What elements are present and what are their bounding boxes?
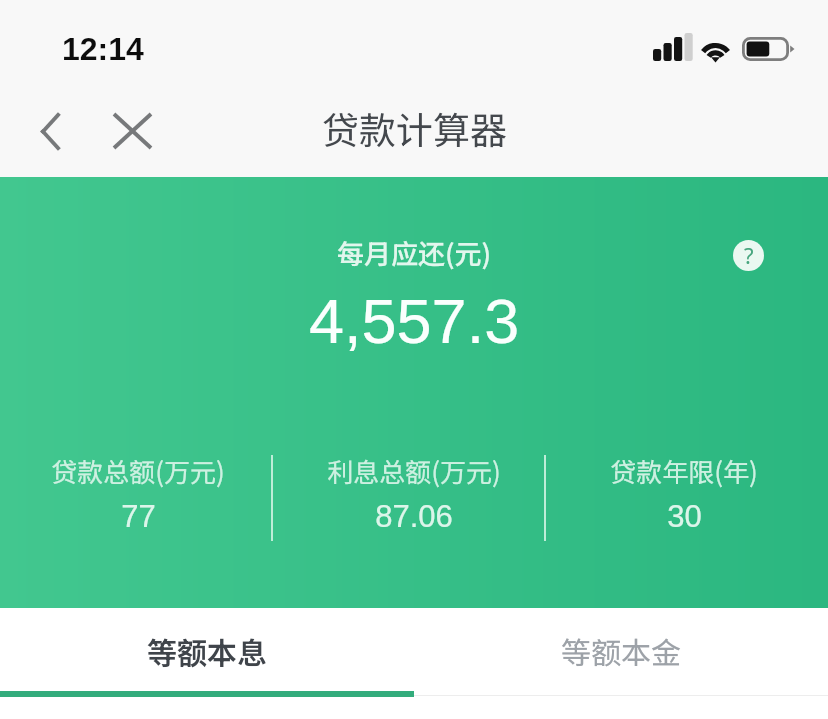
button[interactable]: Close [100,85,164,177]
button[interactable]: 等额本金 [414,608,828,692]
button[interactable]: Help [733,240,764,271]
button[interactable]: 等额本息 [0,608,414,692]
staticText: 30 [667,499,702,534]
staticText: 4,557.3 [309,286,520,356]
staticText: 等额本息 [147,629,267,672]
staticText: 贷款年限(年) [610,452,758,490]
staticText: 每月应还(元) [337,233,492,272]
staticText: 77 [121,499,156,534]
staticText: 等额本金 [561,629,681,672]
staticText: 贷款计算器 [322,101,507,155]
staticText: 贷款总额(万元) [51,452,225,490]
staticText: 12:14 [62,31,144,67]
staticText: ? [744,240,754,270]
staticText: 87.06 [375,499,453,534]
staticText: 利息总额(万元) [327,452,501,490]
button[interactable]: Back [0,85,100,177]
